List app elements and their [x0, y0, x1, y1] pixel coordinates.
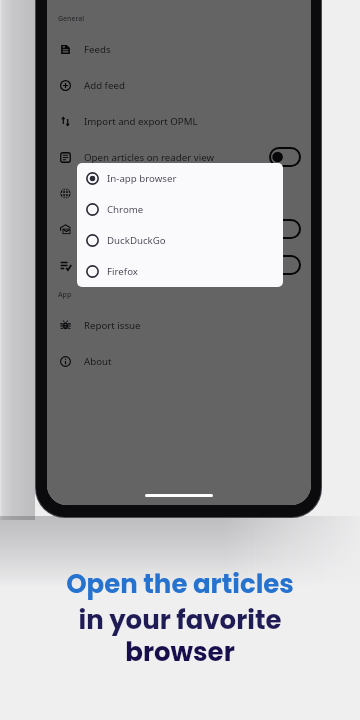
staticText: Chrome: [107, 203, 144, 216]
staticText: Mark as read on scroll: [84, 223, 269, 236]
staticText: browser: [125, 634, 235, 670]
button[interactable]: Toggle: [269, 255, 301, 275]
button[interactable]: Report issue: [47, 307, 311, 343]
staticText: Firefox: [107, 265, 138, 278]
staticText: In-app browser: [107, 172, 177, 185]
staticText: General: [58, 14, 85, 24]
button[interactable]: In-app browser: [77, 163, 283, 194]
staticText: Open the articles: [66, 566, 294, 602]
staticText: Sync on open: [84, 259, 269, 272]
button[interactable]: Sync on open: [47, 247, 311, 283]
staticText: Report issue: [84, 319, 301, 332]
button[interactable]: Feeds: [47, 31, 311, 67]
staticText: About: [84, 355, 301, 368]
button[interactable]: Add feed: [47, 67, 311, 103]
staticText: Open articles on reader view: [84, 151, 269, 164]
button[interactable]: Chrome: [77, 194, 283, 225]
button[interactable]: DuckDuckGo: [77, 225, 283, 256]
button[interactable]: About: [47, 343, 311, 379]
staticText: Import and export OPML: [84, 115, 301, 128]
button[interactable]: Browser: [47, 175, 311, 211]
staticText: Browser: [84, 187, 301, 200]
button[interactable]: Import and export OPML: [47, 103, 311, 139]
staticText: Feeds: [84, 43, 301, 56]
staticText: Add feed: [84, 79, 301, 92]
button[interactable]: Toggle: [269, 147, 301, 167]
button[interactable]: Mark as read on scroll: [47, 211, 311, 247]
staticText: App: [58, 290, 72, 300]
staticText: DuckDuckGo: [107, 234, 166, 247]
staticText: in your favorite: [78, 602, 282, 638]
button[interactable]: Open articles on reader view: [47, 139, 311, 175]
button[interactable]: Toggle: [269, 219, 301, 239]
button[interactable]: Firefox: [77, 256, 283, 287]
